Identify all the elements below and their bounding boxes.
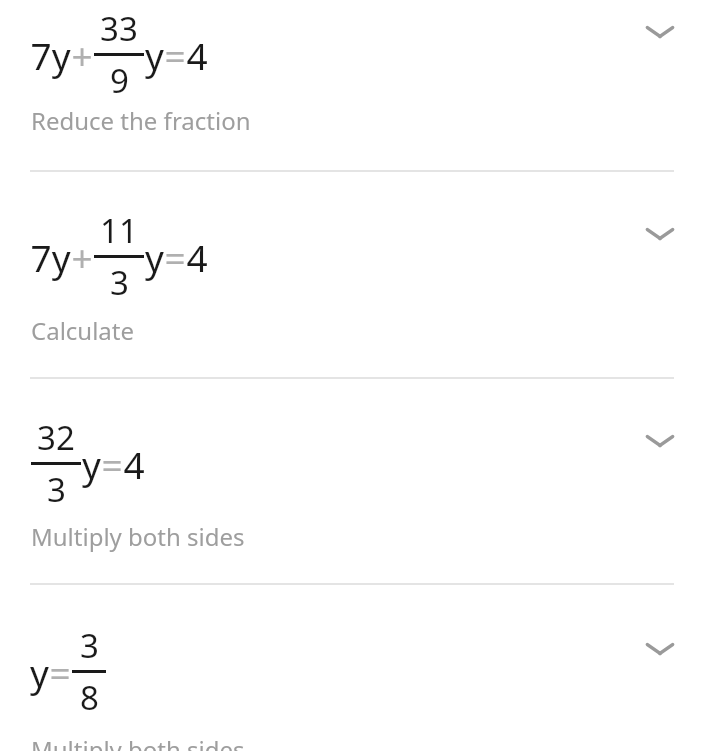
staticText: 4 [186, 30, 208, 80]
staticText: 9 [110, 58, 129, 103]
staticText: y [82, 439, 101, 489]
staticText: 3 [80, 623, 99, 668]
button[interactable]: y [0, 585, 704, 751]
staticText: 8 [80, 675, 99, 720]
staticText: y [30, 647, 49, 697]
staticText: 3 [47, 467, 66, 512]
button[interactable]: Expand step [638, 419, 682, 463]
staticText: = [49, 647, 71, 697]
button[interactable]: 32 [0, 379, 704, 583]
staticText: 4 [186, 232, 208, 282]
staticText: = [164, 30, 186, 80]
staticText: + [71, 232, 93, 282]
staticText: 33 [100, 6, 138, 51]
button[interactable]: Expand step [638, 10, 682, 54]
staticText: Reduce the fraction [31, 104, 251, 137]
staticText: 7y [30, 232, 71, 282]
staticText: y [145, 232, 164, 282]
staticText: Multiply both sides [31, 733, 245, 751]
button[interactable]: Expand step [638, 627, 682, 671]
staticText: 7y [30, 30, 71, 80]
button[interactable]: 7y [0, 172, 704, 377]
staticText: 3 [110, 260, 129, 305]
staticText: = [101, 439, 123, 489]
staticText: Calculate [31, 314, 135, 347]
staticText: + [71, 30, 93, 80]
staticText: y [145, 30, 164, 80]
staticText: = [164, 232, 186, 282]
staticText: 32 [37, 415, 75, 460]
button[interactable]: Expand step [638, 212, 682, 256]
staticText: 4 [123, 439, 145, 489]
staticText: Multiply both sides [31, 520, 245, 553]
button[interactable]: 7y [0, 0, 704, 170]
staticText: 11 [100, 208, 138, 253]
